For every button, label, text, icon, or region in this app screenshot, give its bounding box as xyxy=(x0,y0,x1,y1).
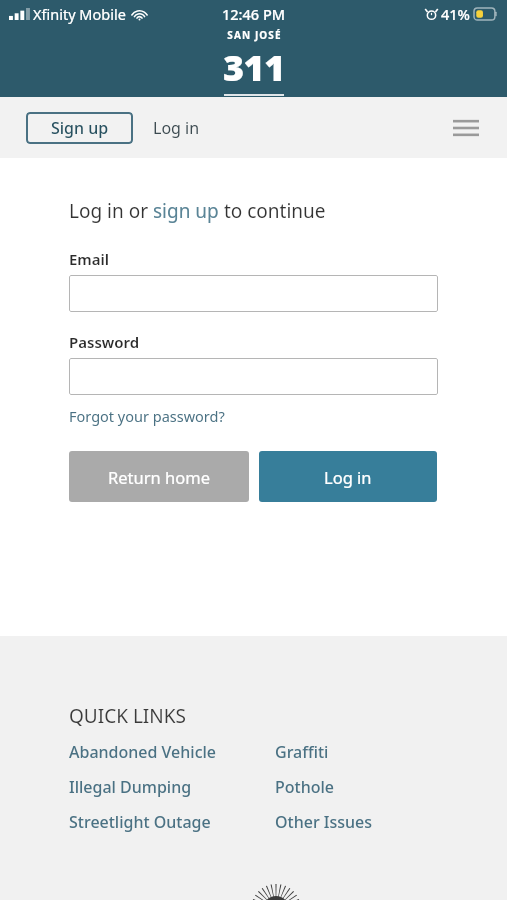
staticText: Log in xyxy=(153,117,200,139)
staticText: 41% xyxy=(441,4,470,24)
staticText: Abandoned Vehicle xyxy=(69,741,216,763)
button[interactable]: Abandoned Vehicle xyxy=(69,741,275,763)
staticText: to continue xyxy=(219,198,326,224)
staticText: Pothole xyxy=(275,776,334,798)
staticText: SAN JOSÉ xyxy=(227,28,282,42)
button[interactable]: Sign up xyxy=(26,112,133,144)
staticText: sign up xyxy=(153,198,219,224)
button[interactable]: Text input xyxy=(69,275,438,312)
staticText: Forgot your password? xyxy=(69,406,225,426)
staticText: Log in or xyxy=(69,198,153,224)
button[interactable]: Other Issues xyxy=(275,811,373,833)
button[interactable]: Text input xyxy=(69,358,438,395)
button[interactable]: Pothole xyxy=(275,776,334,798)
button[interactable]: Log in xyxy=(259,451,437,502)
button[interactable]: sign up xyxy=(153,198,219,224)
button[interactable]: Streetlight Outage xyxy=(69,811,275,833)
button[interactable]: Graffiti xyxy=(275,741,329,763)
staticText: Other Issues xyxy=(275,811,373,833)
staticText: Return home xyxy=(108,466,210,488)
button[interactable]: Open menu xyxy=(445,107,487,149)
staticText: 311 xyxy=(223,43,285,92)
staticText: Email xyxy=(69,249,110,269)
staticText: Sign up xyxy=(51,117,109,139)
staticText: Password xyxy=(69,332,140,352)
staticText: Streetlight Outage xyxy=(69,811,211,833)
staticText: Illegal Dumping xyxy=(69,776,192,798)
staticText: Log in xyxy=(324,466,372,488)
staticText: Xfinity Mobile xyxy=(33,4,126,24)
button[interactable]: Log in xyxy=(149,111,204,145)
button[interactable]: Forgot your password? xyxy=(69,406,225,426)
staticText: QUICK LINKS xyxy=(69,703,186,729)
button[interactable]: Illegal Dumping xyxy=(69,776,275,798)
staticText: Graffiti xyxy=(275,741,329,763)
button[interactable]: Return home xyxy=(69,451,249,502)
staticText: 12:46 PM xyxy=(222,4,286,24)
